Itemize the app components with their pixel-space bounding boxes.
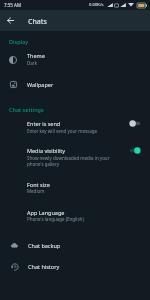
button[interactable]: Back [0, 10, 21, 31]
button[interactable]: Font size [0, 177, 150, 197]
staticText: phone's gallery [27, 161, 60, 167]
staticText: Font size [27, 181, 50, 188]
staticText: Enter is send [27, 120, 61, 127]
button[interactable]: App Language [0, 205, 150, 225]
staticText: 7:55 AM [4, 2, 22, 8]
staticText: Chat history [28, 263, 60, 270]
staticText: Medium [27, 188, 45, 194]
button[interactable]: Chat history [0, 258, 150, 278]
staticText: Dark [27, 60, 38, 66]
button[interactable]: Theme [0, 50, 150, 78]
button[interactable]: Enter is send [0, 116, 150, 136]
staticText: Wallpaper [27, 81, 54, 88]
staticText: App Language [27, 209, 65, 216]
staticText: Display [9, 38, 29, 45]
staticText: Media visibility [27, 147, 66, 154]
button[interactable]: Media visibility [0, 143, 150, 169]
staticText: Phone's language (English) [27, 216, 84, 222]
staticText: Chat settings [9, 106, 44, 113]
button[interactable]: Chat backup [0, 237, 150, 257]
staticText: 0.00K/s [89, 2, 104, 8]
staticText: Enter key will send your message [27, 128, 98, 134]
staticText: Theme [27, 52, 45, 59]
staticText: Show newly downloaded media in your [27, 155, 110, 161]
staticText: Chats [28, 17, 47, 27]
staticText: Chat backup [28, 242, 61, 249]
button[interactable]: Wallpaper [0, 78, 150, 104]
